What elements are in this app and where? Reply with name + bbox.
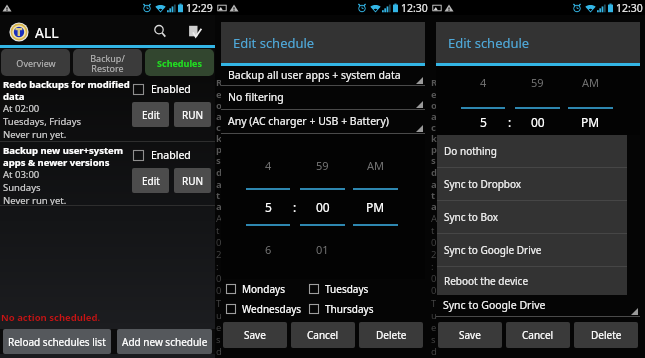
button[interactable]: 00 [300,190,345,224]
staticText: Never run yet. [3,194,67,205]
button[interactable]: Enabled [133,82,191,96]
staticText: Reboot the device [444,274,529,288]
staticText: Overview [16,57,56,69]
staticText: 12:30 [616,1,643,15]
staticText: Backup new user+system apps & newer vers… [3,144,124,168]
staticText: Sync to Dropbox [444,177,522,191]
button[interactable]: Delete [359,322,423,348]
staticText: Redo backups for modified data [3,78,130,102]
staticText: RUN [182,174,204,188]
staticText: : [293,199,297,215]
staticText: Tuesdays [325,282,369,296]
staticText: 5 [480,114,487,130]
button[interactable]: No filtering [221,86,425,110]
staticText: Enabled [151,148,191,162]
staticText: Edit [142,108,160,122]
staticText: 12:30 [401,1,428,15]
staticText: Sundays [3,181,41,194]
staticText: 00 [531,114,545,130]
staticText: At 02:00 [3,102,40,115]
staticText: Sync to Box [444,210,499,224]
button[interactable]: Search [145,16,175,47]
staticText: 6 [265,242,272,257]
button[interactable]: Sync to Google Drive [437,234,627,266]
staticText: Never run yet. [3,128,67,141]
staticText: Delete [591,328,622,342]
staticText: Delete [376,328,407,342]
button[interactable]: Delete [574,322,638,348]
button[interactable]: Backup new user+system apps & newer vers… [0,142,215,205]
staticText: RUN [182,108,204,122]
button[interactable]: Mondays [226,282,309,296]
staticText: 59 [531,75,544,90]
button[interactable]: Backup all user apps + system data [221,66,425,86]
staticText: At 02:00 [216,212,222,297]
button[interactable]: 5 [246,190,290,224]
staticText: 00 [316,199,330,215]
button[interactable]: Sync to Google Drive [436,295,640,317]
staticText: Redo backups [216,76,222,166]
staticText: Enabled [151,82,191,96]
button[interactable]: Schedules [145,49,214,76]
staticText: No filtering [228,90,284,104]
staticText: PM [581,114,600,130]
button[interactable]: Overview [1,49,70,76]
staticText: PM [366,199,385,215]
button[interactable]: Reload schedules list [3,329,111,354]
staticText: Reload schedules list [8,335,106,349]
button[interactable]: Cancel [291,322,355,348]
button[interactable]: Sync to Dropbox [437,168,627,200]
button[interactable]: Cancel [506,322,570,348]
button[interactable]: Any (AC charger + USB + Battery) [221,110,425,134]
button[interactable]: Wednesdays [226,302,309,316]
staticText: Edit schedule [448,34,530,52]
staticText: 59 [316,158,329,173]
staticText: 12:29 [186,1,213,15]
staticText: Thursdays [325,302,374,316]
button[interactable]: Edit [132,102,169,127]
staticText: Schedules [157,57,202,69]
staticText: Edit schedule [233,34,315,52]
button[interactable]: Backup/ Restore [73,49,142,76]
button[interactable]: PM [353,190,398,224]
staticText: Redo backups [431,76,437,166]
staticText: 01 [316,242,329,257]
staticText: No action scheduled. [1,311,101,324]
button[interactable]: Add new schedule [117,329,212,354]
button[interactable]: RUN [174,102,211,127]
button[interactable]: Sync to Box [437,201,627,233]
button[interactable]: RUN [174,168,211,193]
button[interactable]: Batch actions [179,16,209,47]
button[interactable]: Redo backups for modified data [0,76,215,141]
staticText: AM [582,75,600,90]
staticText: ALL [35,23,59,42]
button[interactable]: Do nothing [437,135,627,167]
staticText: 4 [265,158,272,173]
staticText: Save [244,328,266,342]
staticText: Wednesdays [242,302,302,316]
staticText: : [508,114,512,130]
staticText: Sync to Google Drive [444,243,542,257]
button[interactable]: Thursdays [309,302,425,316]
staticText: Tuesdays, Fridays [3,115,82,128]
button[interactable]: Enabled [133,148,191,162]
staticText: data [431,166,437,212]
staticText: Backup/ Restore [90,52,125,74]
button[interactable]: Save [438,322,502,348]
staticText: 5 [265,199,272,215]
staticText: At 03:00 [3,168,40,181]
staticText: Cancel [522,328,554,342]
staticText: Do nothing [444,144,497,158]
staticText: Cancel [307,328,339,342]
staticText: Save [459,328,481,342]
staticText: Mondays [242,282,285,296]
button[interactable]: Save [223,322,287,348]
staticText: 4 [480,75,487,90]
staticText: Edit [142,174,160,188]
staticText: Any (AC charger + USB + Battery) [228,114,389,128]
staticText: AM [367,158,385,173]
button[interactable]: Edit [132,168,169,193]
button[interactable]: Tuesdays [309,282,425,296]
button[interactable]: Reboot the device [437,267,627,295]
staticText: data [216,166,222,212]
